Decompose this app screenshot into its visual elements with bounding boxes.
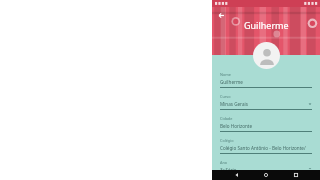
staticText: Curso: [220, 94, 231, 99]
button[interactable]: Colégio: [220, 138, 312, 154]
button[interactable]: Curso: [220, 94, 312, 110]
staticText: Colégio: [220, 138, 234, 143]
button[interactable]: Recent apps: [291, 170, 301, 180]
button[interactable]: Home: [261, 170, 271, 180]
staticText: Cidade: [220, 116, 233, 121]
staticText: 3º Série: [220, 167, 308, 170]
staticText: Ano: [220, 160, 228, 165]
button[interactable]: Ano: [220, 160, 312, 170]
staticText: Minas Gerais: [220, 101, 308, 107]
button[interactable]: Cidade: [220, 116, 312, 132]
staticText: Colégio Santo Antônio - Belo Horizonte/M…: [220, 145, 312, 151]
button[interactable]: Back: [215, 9, 227, 21]
staticText: Guilherme: [244, 19, 289, 31]
button[interactable]: Back: [232, 170, 242, 180]
staticText: Nome: [220, 72, 231, 77]
button[interactable]: Nome: [220, 72, 312, 88]
staticText: Belo Horizonte: [220, 123, 312, 129]
button[interactable]: Profile photo: [253, 42, 280, 69]
staticText: Guilherme: [220, 79, 312, 85]
